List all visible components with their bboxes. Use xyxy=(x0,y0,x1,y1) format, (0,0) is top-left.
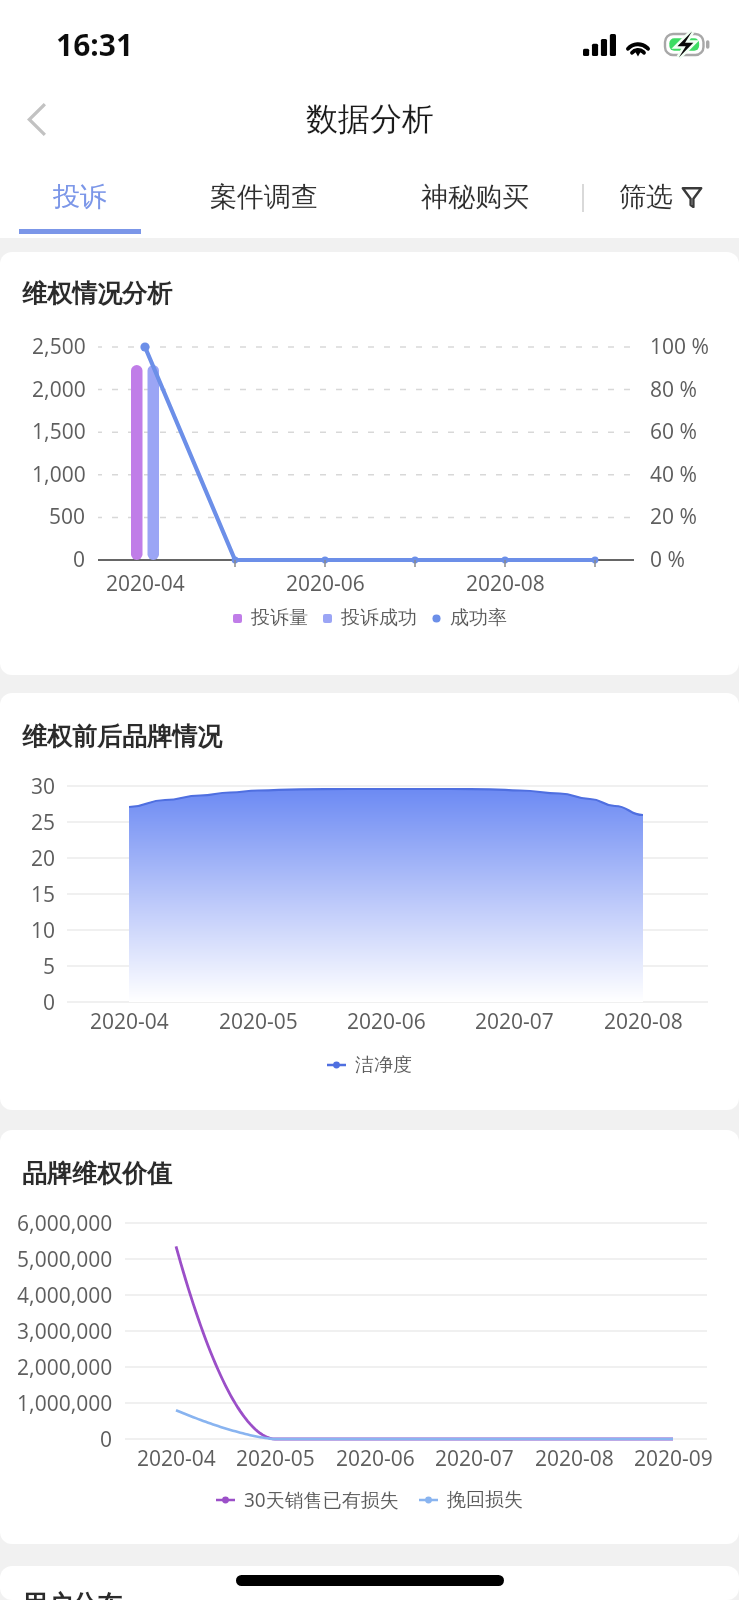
staticText: 2020-04 xyxy=(90,1007,169,1036)
staticText: 维权情况分析 xyxy=(22,278,172,309)
staticText: 15 xyxy=(31,880,56,909)
button[interactable]: 投诉量 xyxy=(233,606,308,630)
staticText: 成功率 xyxy=(450,606,507,630)
staticText: 3,000,000 xyxy=(17,1317,113,1346)
staticText: 2020-04 xyxy=(106,569,185,598)
staticText: 筛选 xyxy=(619,180,673,214)
button[interactable]: 神秘购买 xyxy=(395,160,555,233)
staticText: 5,000,000 xyxy=(17,1245,113,1274)
staticText: 2020-06 xyxy=(347,1007,426,1036)
staticText: 2020-08 xyxy=(535,1444,614,1473)
staticText: 500 xyxy=(49,502,86,531)
button[interactable]: 洁净度 xyxy=(327,1053,412,1077)
staticText: 案件调查 xyxy=(210,180,318,214)
staticText: 数据分析 xyxy=(306,99,434,139)
button[interactable]: 投诉成功 xyxy=(323,606,417,630)
button[interactable]: 投诉 xyxy=(20,160,140,233)
staticText: 挽回损失 xyxy=(447,1488,523,1512)
staticText: 0 % xyxy=(650,545,685,574)
staticText: 4,000,000 xyxy=(17,1281,113,1310)
staticText: 0 xyxy=(100,1425,113,1454)
staticText: 2020-08 xyxy=(604,1007,683,1036)
staticText: 6,000,000 xyxy=(17,1209,113,1238)
button[interactable]: 挽回损失 xyxy=(419,1488,523,1512)
staticText: 1,000,000 xyxy=(17,1389,113,1418)
staticText: 16:31 xyxy=(56,24,134,65)
staticText: 40 % xyxy=(650,460,697,489)
staticText: 1,500 xyxy=(32,417,86,446)
button[interactable]: 30天销售已有损失 xyxy=(216,1487,399,1513)
button[interactable]: 筛选 xyxy=(619,160,715,233)
staticText: 2020-08 xyxy=(466,569,545,598)
button[interactable]: 案件调查 xyxy=(184,160,344,233)
staticText: 神秘购买 xyxy=(421,180,529,214)
staticText: 25 xyxy=(31,808,56,837)
staticText: 0 xyxy=(43,988,56,1017)
staticText: 投诉量 xyxy=(251,606,308,630)
staticText: 2020-06 xyxy=(286,569,365,598)
staticText: 10 xyxy=(31,916,56,945)
staticText: 洁净度 xyxy=(355,1053,412,1077)
staticText: 品牌维权价值 xyxy=(22,1158,172,1189)
staticText: 30天销售已有损失 xyxy=(244,1487,399,1513)
staticText: 2020-06 xyxy=(336,1444,415,1473)
staticText: 2,500 xyxy=(32,332,86,361)
staticText: 60 % xyxy=(650,417,697,446)
staticText: 5 xyxy=(43,952,56,981)
staticText: 2020-09 xyxy=(634,1444,713,1473)
staticText: 维权前后品牌情况 xyxy=(22,721,222,752)
staticText: 100 % xyxy=(650,332,709,361)
staticText: 2020-07 xyxy=(435,1444,514,1473)
staticText: 1,000 xyxy=(32,460,86,489)
staticText: 2020-04 xyxy=(137,1444,216,1473)
staticText: 2020-05 xyxy=(219,1007,298,1036)
staticText: 投诉成功 xyxy=(341,606,417,630)
staticText: 2020-05 xyxy=(236,1444,315,1473)
staticText: 20 % xyxy=(650,502,697,531)
staticText: 0 xyxy=(73,545,86,574)
staticText: 2,000,000 xyxy=(17,1353,113,1382)
staticText: 2,000 xyxy=(32,375,86,404)
staticText: 80 % xyxy=(650,375,697,404)
button[interactable]: 成功率 xyxy=(432,606,507,630)
staticText: 20 xyxy=(31,844,56,873)
staticText: 用户分布 xyxy=(22,1589,122,1600)
button[interactable]: Back xyxy=(8,91,64,147)
staticText: 2020-07 xyxy=(475,1007,554,1036)
staticText: 投诉 xyxy=(53,180,107,214)
staticText: 30 xyxy=(31,772,56,801)
